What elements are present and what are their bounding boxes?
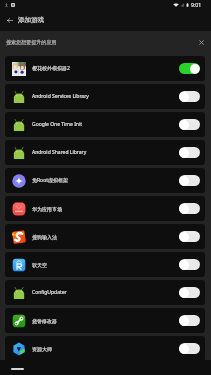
staticText: 添加游戏 <box>18 16 45 24</box>
button[interactable]: Disabled <box>179 147 200 158</box>
staticText: Android Shared Library <box>32 149 176 156</box>
button[interactable]: Disabled <box>179 287 200 298</box>
staticText: 软天空 <box>32 262 176 268</box>
button[interactable]: ConfigUpdater <box>5 280 205 305</box>
button[interactable]: Disabled <box>179 231 200 242</box>
button[interactable]: Disabled <box>179 91 200 102</box>
staticText: 免Root虚拟框架 <box>32 177 176 184</box>
staticText: 资源大师 <box>32 346 176 352</box>
button[interactable]: 搜狗输入法 <box>5 224 205 249</box>
staticText: 搜索您想要提升的应用 <box>6 39 57 45</box>
button[interactable]: Disabled <box>179 175 200 186</box>
button[interactable]: Disabled <box>179 203 200 214</box>
button[interactable]: Back <box>2 12 18 28</box>
button[interactable]: 资源大师 <box>5 336 205 361</box>
button[interactable]: Enabled <box>179 63 200 74</box>
staticText: 烧饼修改器 <box>32 318 176 324</box>
staticText: 搜狗输入法 <box>32 234 176 240</box>
button[interactable]: Google One Time Init <box>5 112 205 137</box>
staticText: ConfigUpdater <box>32 289 176 296</box>
button[interactable]: Disabled <box>179 259 200 270</box>
button[interactable]: Disabled <box>179 343 200 354</box>
button[interactable]: 华为应用市场 <box>5 196 205 221</box>
button[interactable]: Android Shared Library <box>5 140 205 165</box>
button[interactable]: Disabled <box>179 315 200 326</box>
button[interactable]: Clear search <box>195 36 207 48</box>
button[interactable]: Android Services Library <box>5 84 205 109</box>
staticText: Google One Time Init <box>32 121 176 128</box>
staticText: 9:01 <box>191 1 202 8</box>
button[interactable]: 烧饼修改器 <box>5 308 205 333</box>
button[interactable]: 免Root虚拟框架 <box>5 168 205 193</box>
staticText: 华为应用市场 <box>32 206 176 212</box>
button[interactable]: Disabled <box>179 119 200 130</box>
staticText: Android Services Library <box>32 93 176 100</box>
button[interactable]: 樱花校外模拟器2 <box>5 56 205 81</box>
staticText: 樱花校外模拟器2 <box>32 65 176 72</box>
button[interactable]: 软天空 <box>5 252 205 277</box>
